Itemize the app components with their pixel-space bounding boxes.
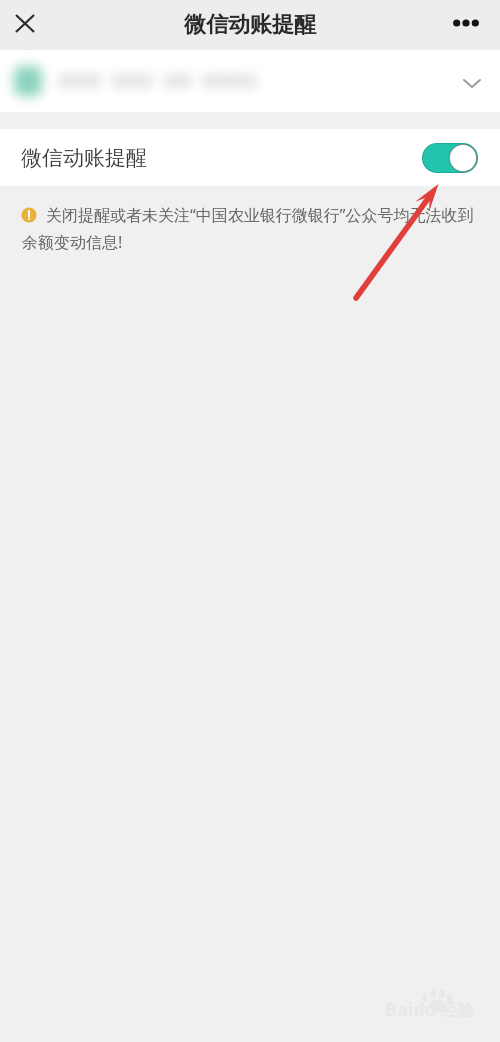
button[interactable]: Notification toggle, on xyxy=(422,143,478,173)
staticText: 微信动账提醒 xyxy=(21,145,147,171)
button[interactable]: More options xyxy=(441,1,490,45)
staticText: 经验 xyxy=(440,1000,474,1021)
button[interactable]: Expand account xyxy=(449,60,495,106)
staticText: 关闭提醒或者未关注“中国农业银行微银行”公众号均无法收到余额变动信息! xyxy=(22,204,478,253)
staticText: Baidu xyxy=(385,997,437,1022)
button[interactable]: Expand account xyxy=(0,50,500,112)
button[interactable]: 微信动账提醒 xyxy=(0,129,500,186)
button[interactable]: Close xyxy=(0,0,50,46)
staticText: 微信动账提醒 xyxy=(184,11,316,39)
